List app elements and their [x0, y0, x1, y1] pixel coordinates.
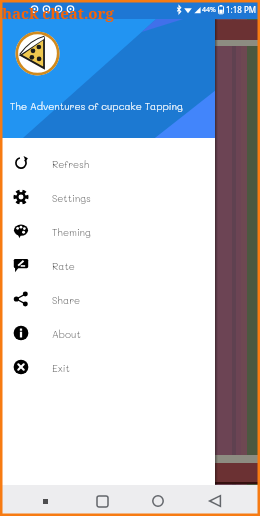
button[interactable]: Settings	[0, 180, 215, 214]
button[interactable]: Home	[146, 489, 170, 513]
staticText: 44%	[202, 5, 216, 15]
button[interactable]: Rate	[0, 248, 215, 282]
staticText: Rate	[52, 259, 75, 272]
staticText: Refresh	[52, 157, 90, 170]
staticText: The Adventures of cupcake Tapping	[10, 99, 183, 112]
staticText: hack cheat.org	[2, 3, 114, 23]
button[interactable]: Refresh	[0, 146, 215, 180]
button[interactable]: Recent apps	[90, 489, 114, 513]
button[interactable]: Share	[0, 282, 215, 316]
staticText: About	[52, 327, 81, 340]
button[interactable]: Theming	[0, 214, 215, 248]
button[interactable]: Back	[203, 489, 227, 513]
staticText: 1:18 PM	[226, 4, 257, 15]
staticText: Settings	[52, 191, 91, 204]
staticText: Theming	[52, 225, 91, 238]
staticText: Share	[52, 293, 80, 306]
button[interactable]: Keyboard	[33, 489, 57, 513]
button[interactable]: About	[0, 316, 215, 350]
staticText: Exit	[52, 361, 70, 374]
button[interactable]: Exit	[0, 350, 215, 384]
